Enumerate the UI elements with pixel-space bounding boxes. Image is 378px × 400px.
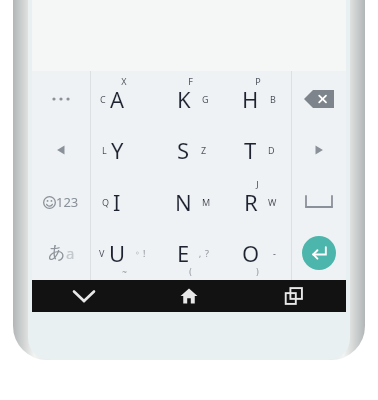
staticText: B bbox=[270, 93, 276, 105]
staticText: D bbox=[268, 144, 275, 156]
staticText: J bbox=[256, 178, 259, 190]
button[interactable]: Home bbox=[136, 280, 241, 312]
staticText: 123 bbox=[56, 193, 79, 211]
staticText: E bbox=[177, 238, 190, 268]
staticText: ? bbox=[205, 247, 209, 259]
staticText: M bbox=[202, 196, 211, 208]
staticText: - bbox=[273, 247, 276, 259]
button[interactable]: ~ bbox=[91, 228, 157, 277]
staticText: U bbox=[109, 238, 126, 268]
staticText: P bbox=[255, 75, 261, 87]
button[interactable]: P bbox=[224, 74, 291, 123]
button[interactable]: N bbox=[157, 177, 224, 226]
staticText: ) bbox=[256, 266, 259, 277]
button[interactable]: Move cursor right bbox=[292, 125, 346, 174]
staticText: W bbox=[268, 196, 277, 208]
button[interactable]: Enter bbox=[292, 228, 346, 277]
staticText: ! bbox=[143, 247, 146, 259]
button[interactable]: ( bbox=[157, 228, 224, 277]
staticText: G bbox=[202, 93, 209, 105]
button[interactable]: Q bbox=[91, 177, 157, 226]
button[interactable]: J bbox=[224, 177, 291, 226]
button[interactable]: S bbox=[157, 125, 224, 174]
button[interactable]: X bbox=[91, 74, 157, 123]
staticText: A bbox=[110, 84, 125, 114]
staticText: a bbox=[66, 243, 75, 263]
staticText: V bbox=[99, 247, 105, 259]
staticText: I bbox=[113, 187, 121, 217]
button[interactable]: F bbox=[157, 74, 224, 123]
staticText: Z bbox=[201, 144, 207, 156]
button[interactable]: Switch to Japanese bbox=[32, 228, 90, 277]
staticText: S bbox=[177, 135, 190, 165]
staticText: X bbox=[121, 75, 127, 87]
staticText: L bbox=[102, 144, 107, 156]
staticText: あ bbox=[48, 242, 66, 263]
button[interactable]: Symbols and numbers bbox=[32, 177, 90, 226]
staticText: ◦ bbox=[135, 249, 140, 258]
button[interactable]: T bbox=[224, 125, 291, 174]
button[interactable]: Backspace bbox=[292, 74, 346, 123]
staticText: H bbox=[242, 84, 259, 114]
button[interactable]: More options bbox=[32, 74, 90, 123]
staticText: Y bbox=[111, 135, 124, 165]
button[interactable]: ) bbox=[224, 228, 291, 277]
staticText: F bbox=[188, 75, 193, 87]
staticText: R bbox=[244, 187, 258, 217]
staticText: Q bbox=[102, 196, 110, 208]
staticText: K bbox=[177, 84, 191, 114]
staticText: ~ bbox=[122, 266, 127, 277]
button[interactable]: Recent apps bbox=[241, 280, 346, 312]
button[interactable]: Hide keyboard bbox=[32, 280, 136, 312]
staticText: N bbox=[175, 187, 192, 217]
button[interactable]: L bbox=[91, 125, 157, 174]
staticText: O bbox=[242, 238, 260, 268]
staticText: , bbox=[199, 248, 202, 259]
button[interactable]: Space bbox=[292, 177, 346, 226]
staticText: T bbox=[244, 135, 257, 165]
staticText: C bbox=[100, 93, 106, 105]
button[interactable]: Move cursor left bbox=[32, 125, 90, 174]
staticText: ( bbox=[189, 266, 192, 277]
